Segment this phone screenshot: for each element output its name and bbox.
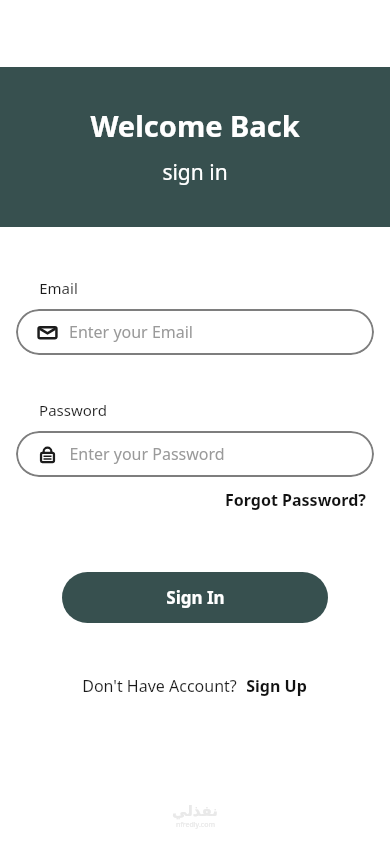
button[interactable]: Forgot Password?	[223, 486, 368, 514]
staticText: Password	[39, 400, 107, 420]
staticText: نفذلي	[172, 802, 218, 819]
staticText: Enter your Email	[69, 321, 193, 343]
staticText: nfredly.com	[176, 820, 215, 830]
button[interactable]: Sign Up	[244, 672, 309, 700]
staticText: sign in	[162, 158, 228, 187]
staticText: Forgot Password?	[225, 489, 366, 511]
staticText: Email	[39, 278, 78, 298]
staticText: Sign In	[166, 586, 225, 609]
staticText: Sign Up	[246, 675, 307, 697]
button[interactable]: Sign In	[62, 572, 328, 623]
button[interactable]: Email input field	[16, 309, 374, 355]
staticText: Welcome Back	[90, 106, 300, 145]
staticText: Enter your Password	[69, 443, 225, 465]
button[interactable]: Password input field	[16, 431, 374, 477]
staticText: Don't Have Account?	[82, 675, 237, 697]
